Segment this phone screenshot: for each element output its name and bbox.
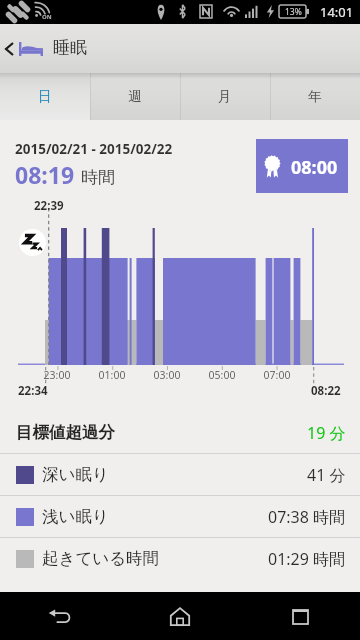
staticText: ON	[42, 13, 52, 21]
button[interactable]: 浅い眠り	[0, 496, 360, 537]
staticText: 23:00	[39, 368, 75, 382]
button[interactable]: 月	[180, 73, 270, 120]
staticText: 05:00	[204, 368, 240, 382]
button[interactable]: Back	[30, 592, 90, 640]
button[interactable]: Recent apps	[270, 592, 330, 640]
staticText: 07:38 時間	[268, 506, 346, 528]
staticText: 01:29 時間	[268, 548, 346, 570]
staticText: 14:01	[320, 3, 354, 21]
staticText: 01:00	[94, 368, 130, 382]
staticText: 03:00	[149, 368, 185, 382]
button[interactable]: Back	[0, 24, 18, 73]
staticText: 2015/02/21 - 2015/02/22	[15, 140, 173, 158]
button[interactable]: 深い眠り	[0, 454, 360, 495]
staticText: 07:00	[259, 368, 295, 382]
button[interactable]: 起きている時間	[0, 538, 360, 579]
staticText: 19 分	[307, 422, 346, 444]
staticText: 22:39	[34, 198, 64, 214]
staticText: 目標値超過分	[16, 422, 115, 443]
button[interactable]: 年	[270, 73, 360, 120]
staticText: 年	[308, 88, 322, 105]
staticText: 浅い眠り	[42, 506, 109, 527]
staticText: 08:19	[15, 159, 75, 190]
staticText: 睡眠	[53, 37, 87, 58]
staticText: 22:34	[18, 383, 48, 399]
staticText: 08:22	[311, 383, 341, 399]
staticText: 深い眠り	[42, 464, 109, 485]
staticText: 週	[128, 88, 142, 105]
staticText: 日	[38, 88, 52, 105]
staticText: 41 分	[307, 464, 346, 486]
button[interactable]: Home	[150, 592, 210, 640]
staticText: 13%	[285, 6, 302, 18]
button[interactable]: 日	[0, 73, 90, 120]
staticText: 08:00	[291, 155, 338, 180]
staticText: 時間	[81, 167, 115, 188]
staticText: 起きている時間	[42, 548, 160, 569]
button[interactable]: 目標値超過分	[0, 412, 360, 453]
button[interactable]: 08:00	[256, 139, 348, 193]
staticText: 月	[218, 88, 232, 105]
button[interactable]: 週	[90, 73, 180, 120]
